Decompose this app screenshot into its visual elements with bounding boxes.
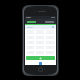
button[interactable]: Key 8	[36, 41, 44, 44]
button[interactable]: Key 5	[36, 36, 44, 39]
button[interactable]: Menu	[25, 19, 56, 24]
button[interactable]: Key 3	[46, 30, 54, 34]
button[interactable]: Key 9	[46, 41, 54, 44]
button[interactable]: Menu	[27, 21, 36, 23]
button[interactable]: Key 15	[46, 51, 54, 54]
button[interactable]: Key 13	[27, 51, 34, 54]
button[interactable]: Key 1	[27, 30, 34, 34]
button[interactable]: Key 12	[46, 46, 54, 49]
button[interactable]: Key 7	[27, 41, 34, 44]
button[interactable]: Key 11	[36, 46, 44, 49]
button[interactable]: Key 6	[46, 36, 54, 39]
button[interactable]: Call	[26, 56, 55, 60]
button[interactable]: Key 4	[27, 36, 34, 39]
button[interactable]: Key 2	[36, 30, 44, 34]
button[interactable]: Keypad	[39, 62, 42, 65]
button[interactable]: Key 10	[27, 46, 34, 49]
button[interactable]: Options	[45, 21, 54, 23]
button[interactable]: Key 14	[36, 51, 44, 54]
